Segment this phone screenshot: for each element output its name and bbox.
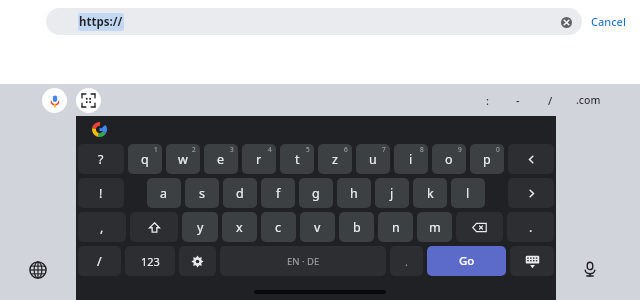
button[interactable]: Clear text — [556, 12, 576, 32]
button[interactable]: a — [147, 178, 181, 208]
button[interactable]: l — [451, 178, 485, 208]
button[interactable]: o — [432, 144, 466, 174]
button[interactable]: y — [182, 212, 218, 242]
button[interactable]: Cancel — [582, 8, 635, 35]
button[interactable]: g — [299, 178, 333, 208]
button[interactable]: ! — [78, 178, 124, 208]
button[interactable]: Less than — [508, 144, 554, 174]
staticText: d — [236, 185, 244, 202]
staticText: 2 — [192, 145, 196, 154]
button[interactable]: z — [318, 144, 352, 174]
staticText: 5 — [306, 145, 310, 154]
staticText: 8 — [420, 145, 424, 154]
staticText: .com — [576, 93, 601, 107]
button[interactable]: ? — [78, 144, 124, 174]
button[interactable]: d — [223, 178, 257, 208]
staticText: i — [409, 151, 413, 168]
button[interactable]: c — [261, 212, 296, 242]
staticText: k — [427, 185, 434, 202]
button[interactable]: Google — [89, 119, 109, 139]
staticText: 4 — [268, 145, 272, 154]
button[interactable]: Change language — [27, 259, 49, 281]
button[interactable]: f — [261, 178, 295, 208]
staticText: f — [276, 185, 281, 202]
button[interactable]: https:// — [46, 8, 582, 35]
button[interactable]: Voice input — [578, 257, 602, 281]
staticText: j — [390, 185, 394, 202]
button[interactable]: 123 — [125, 246, 175, 276]
staticText: . — [405, 254, 408, 269]
staticText: b — [353, 219, 361, 236]
button[interactable]: q — [128, 144, 162, 174]
staticText: c — [275, 219, 282, 236]
button[interactable]: - — [502, 84, 534, 116]
staticText: 1 — [154, 145, 158, 154]
button[interactable]: s — [185, 178, 219, 208]
button[interactable]: Settings — [179, 246, 216, 276]
button[interactable]: Voice search — [42, 88, 67, 113]
staticText: / — [548, 93, 553, 108]
button[interactable]: t — [280, 144, 314, 174]
staticText: https:// — [79, 14, 123, 30]
button[interactable]: k — [413, 178, 447, 208]
staticText: y — [197, 219, 204, 236]
button[interactable]: / — [534, 84, 566, 116]
staticText: v — [314, 219, 321, 236]
staticText: EN · DE — [287, 255, 320, 268]
button[interactable]: i — [394, 144, 428, 174]
button[interactable]: Go — [427, 246, 506, 276]
staticText: u — [369, 151, 377, 168]
button[interactable]: v — [300, 212, 335, 242]
button[interactable]: u — [356, 144, 390, 174]
button[interactable]: n — [378, 212, 413, 242]
button[interactable]: . — [507, 212, 554, 242]
staticText: a — [160, 185, 168, 202]
staticText: 6 — [344, 145, 348, 154]
button[interactable]: Shift — [130, 212, 178, 242]
button[interactable]: EN · DE — [220, 246, 386, 276]
staticText: 0 — [496, 145, 500, 154]
button[interactable]: b — [339, 212, 374, 242]
staticText: q — [141, 151, 149, 168]
staticText: : — [486, 93, 489, 108]
button[interactable]: Hide keyboard — [510, 246, 554, 276]
staticText: l — [466, 185, 470, 202]
button[interactable]: : — [472, 84, 502, 116]
staticText: - — [516, 93, 520, 108]
staticText: / — [97, 253, 102, 270]
staticText: ! — [99, 185, 103, 202]
staticText: 9 — [458, 145, 462, 154]
staticText: ? — [98, 151, 104, 168]
button[interactable]: h — [337, 178, 371, 208]
staticText: o — [445, 151, 453, 168]
staticText: m — [429, 219, 441, 236]
staticText: t — [295, 151, 300, 168]
staticText: r — [256, 151, 262, 168]
button[interactable]: w — [166, 144, 200, 174]
staticText: w — [178, 151, 188, 168]
staticText: 123 — [141, 254, 160, 269]
staticText: p — [483, 151, 491, 168]
staticText: 3 — [230, 145, 234, 154]
staticText: h — [350, 185, 358, 202]
button[interactable]: j — [375, 178, 409, 208]
staticText: 7 — [382, 145, 386, 154]
button[interactable]: Backspace — [456, 212, 503, 242]
button[interactable]: .com — [566, 84, 610, 116]
button[interactable]: / — [78, 246, 121, 276]
staticText: Cancel — [591, 14, 626, 29]
button[interactable]: . — [390, 246, 423, 276]
button[interactable]: Greater than — [508, 178, 554, 208]
button[interactable]: p — [470, 144, 504, 174]
button[interactable]: Scan QR code — [76, 88, 101, 113]
button[interactable]: e — [204, 144, 238, 174]
button[interactable]: r — [242, 144, 276, 174]
button[interactable]: m — [417, 212, 452, 242]
staticText: s — [199, 185, 205, 202]
staticText: n — [392, 219, 400, 236]
staticText: x — [236, 219, 243, 236]
staticText: g — [312, 185, 320, 202]
staticText: . — [529, 219, 533, 236]
button[interactable]: x — [222, 212, 257, 242]
button[interactable]: , — [78, 212, 126, 242]
